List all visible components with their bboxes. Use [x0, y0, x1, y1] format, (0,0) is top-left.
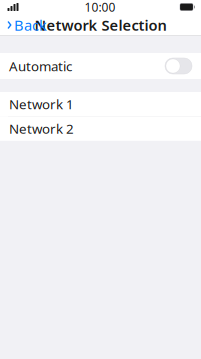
staticText: Back: [14, 15, 47, 35]
button[interactable]: Automatic: [0, 53, 201, 79]
staticText: Network 1: [9, 95, 74, 113]
staticText: Network 2: [9, 120, 74, 137]
staticText: 10:00: [84, 0, 115, 15]
button[interactable]: Back: [0, 11, 47, 39]
button[interactable]: Network 2: [0, 116, 201, 140]
staticText: Network Selection: [34, 15, 166, 35]
staticText: Automatic: [9, 57, 72, 75]
button[interactable]: Network 1: [0, 92, 201, 116]
